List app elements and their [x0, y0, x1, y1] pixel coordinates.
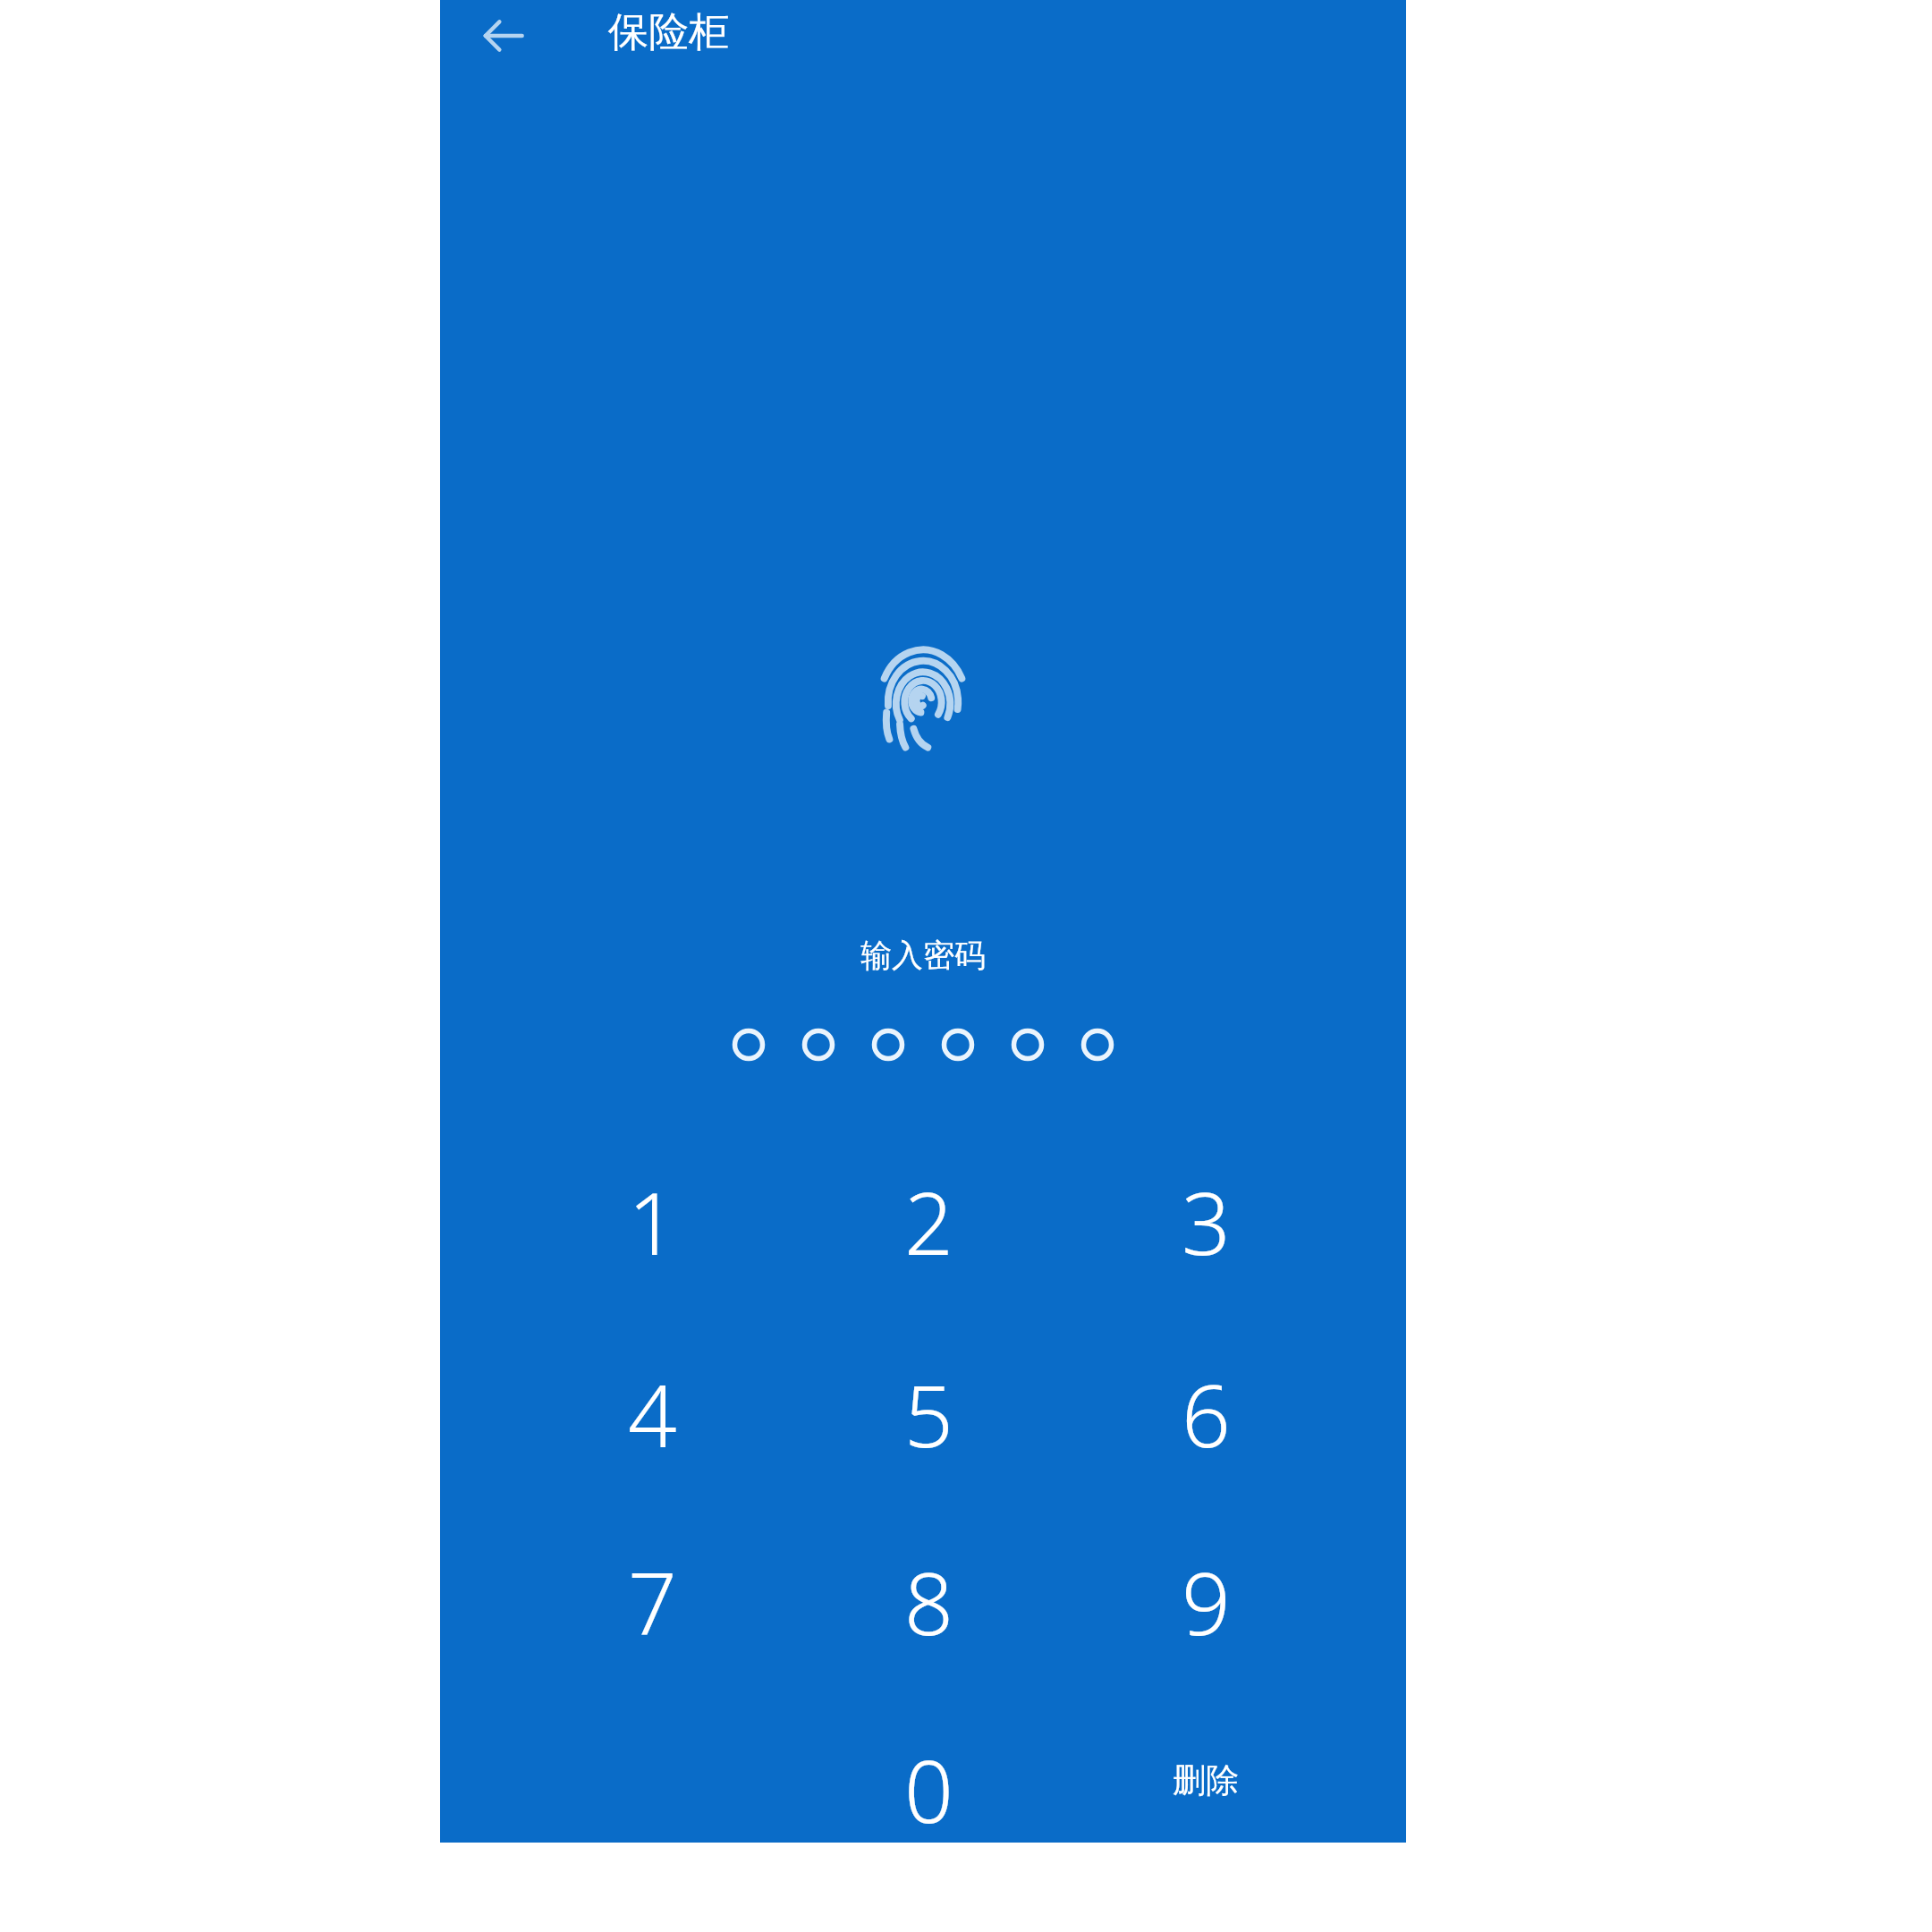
button[interactable]: 4 [540, 1328, 764, 1498]
staticText: 删除 [1173, 1759, 1239, 1801]
staticText: 7 [628, 1543, 677, 1660]
staticText: 1 [628, 1163, 677, 1280]
staticText: 输入密码 [860, 936, 986, 975]
staticText: 3 [1182, 1163, 1231, 1280]
button[interactable]: 6 [1094, 1328, 1318, 1498]
staticText: 2 [904, 1163, 953, 1280]
button[interactable]: 指纹解锁 [876, 640, 970, 757]
staticText: 5 [904, 1355, 953, 1472]
button[interactable]: 9 [1094, 1516, 1318, 1686]
button[interactable]: 1 [540, 1136, 764, 1306]
button[interactable]: 删除 [1094, 1695, 1318, 1865]
button[interactable]: 0 [817, 1704, 1040, 1874]
staticText: 6 [1182, 1355, 1231, 1472]
staticText: 保险柜 [608, 7, 729, 58]
button[interactable]: 返回 [479, 11, 529, 61]
button[interactable]: 7 [540, 1516, 764, 1686]
button[interactable]: 5 [817, 1328, 1040, 1498]
button[interactable]: 3 [1094, 1136, 1318, 1306]
button[interactable]: 2 [817, 1136, 1040, 1306]
staticText: 8 [904, 1543, 953, 1660]
staticText: 4 [628, 1355, 677, 1472]
staticText: 9 [1182, 1543, 1231, 1660]
staticText: 0 [904, 1731, 953, 1848]
button[interactable]: 8 [817, 1516, 1040, 1686]
